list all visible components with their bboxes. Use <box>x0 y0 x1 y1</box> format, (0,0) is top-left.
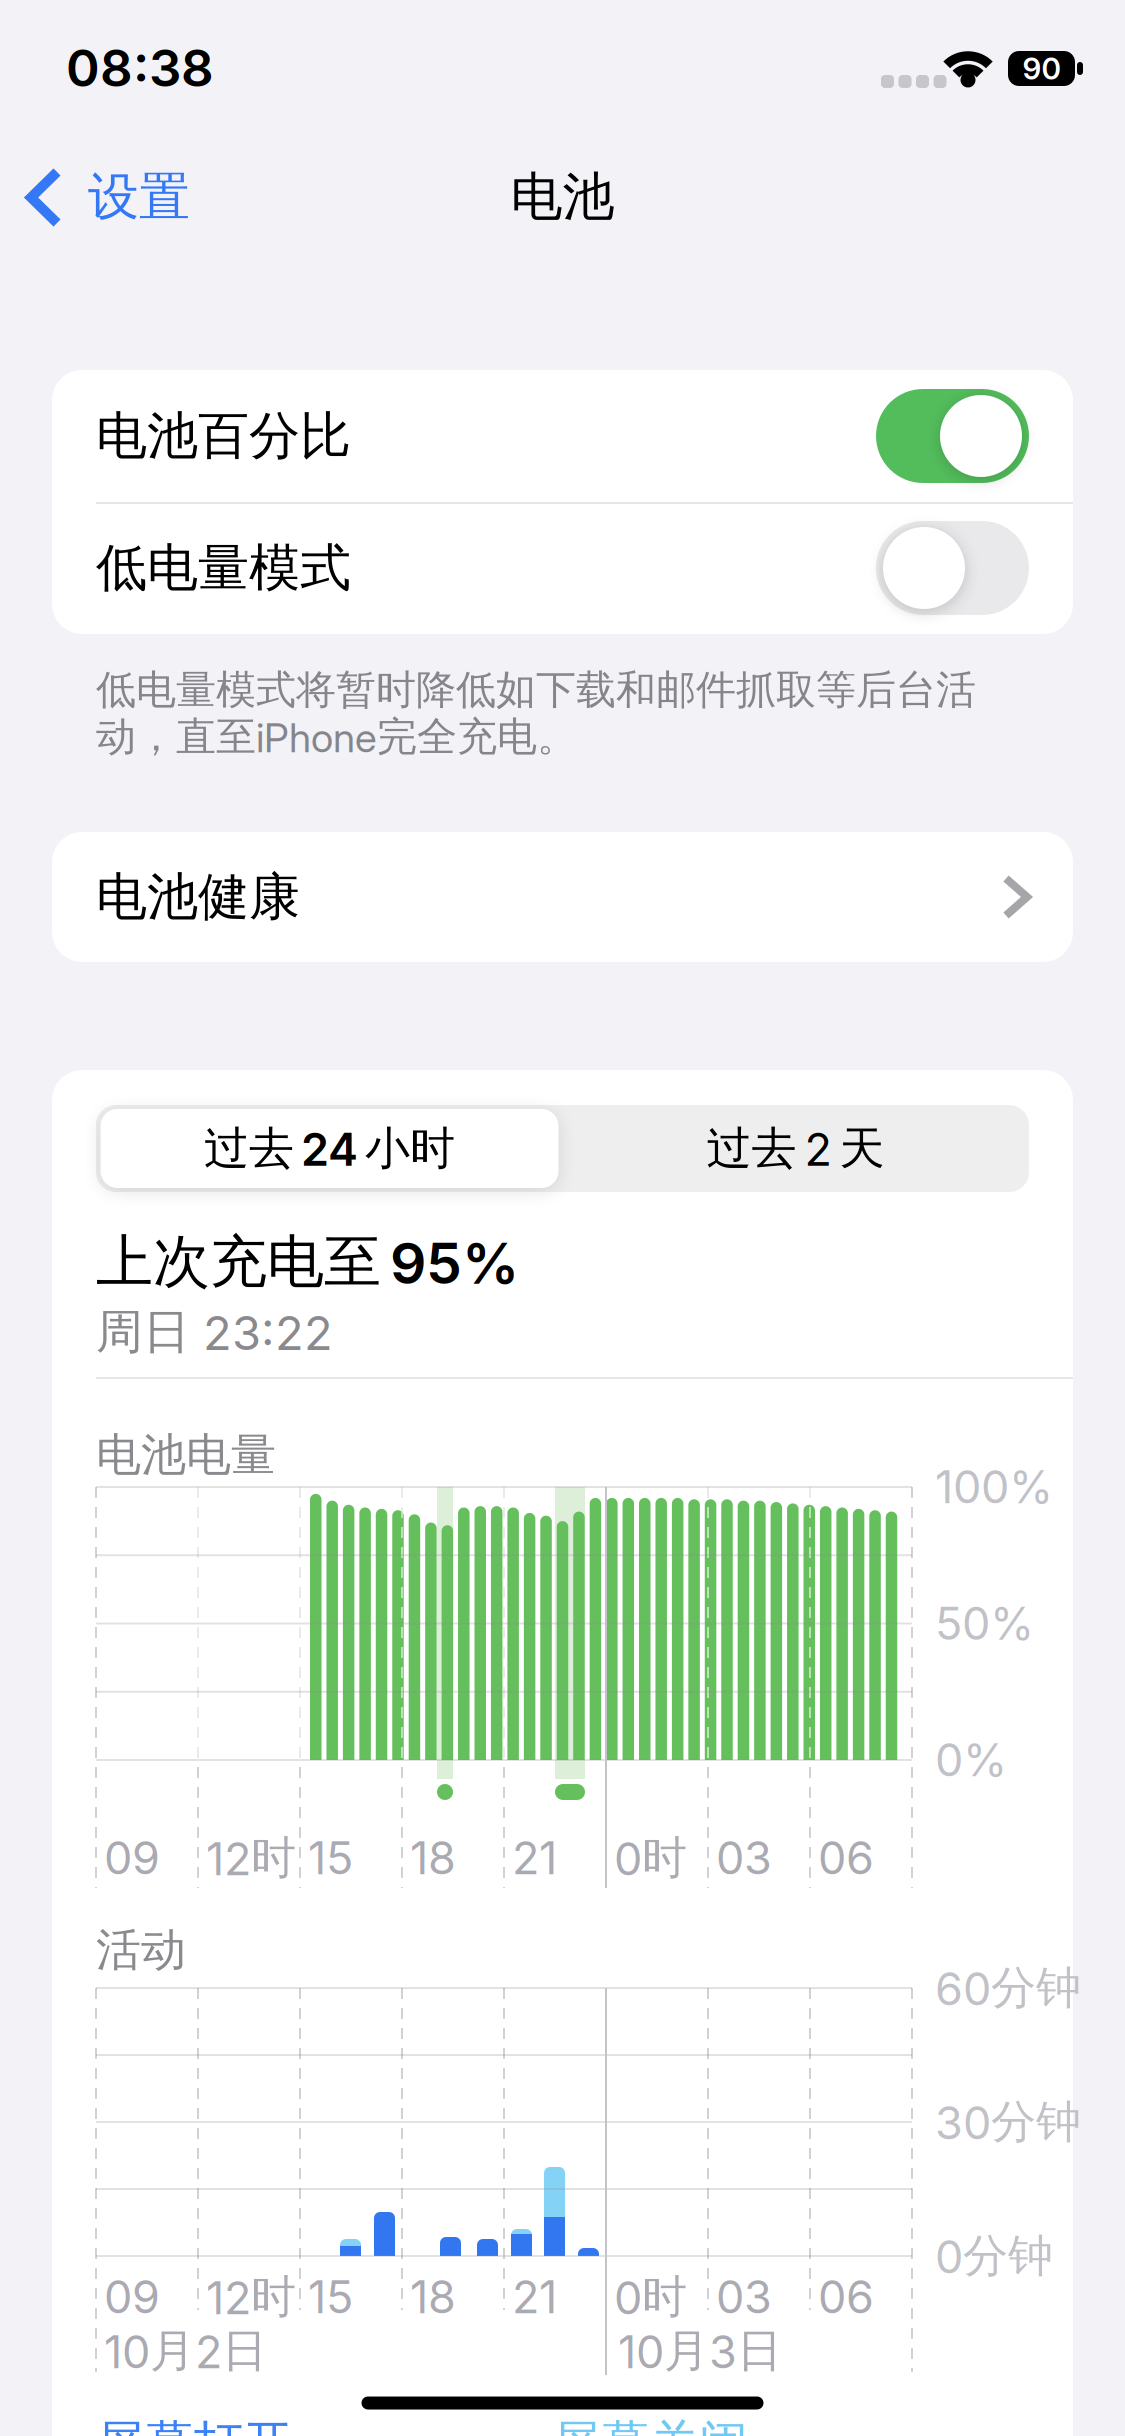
staticText: 0% <box>935 1733 1007 1787</box>
staticText: 09 <box>104 1831 160 1885</box>
staticText: 06 <box>818 2270 874 2324</box>
staticText: 18 <box>410 2270 456 2324</box>
staticText: 12时 <box>206 1830 296 1886</box>
staticText: 03 <box>716 2270 772 2324</box>
staticText: 活动 <box>96 1922 186 1978</box>
staticText: 10月3日 <box>618 2323 782 2379</box>
staticText: 电池百分比 <box>96 405 351 467</box>
staticText: 100% <box>935 1460 1053 1514</box>
staticText: 60分钟 <box>935 1960 1081 2016</box>
staticText: 06 <box>818 1831 874 1885</box>
staticText: 过去 2 天 <box>706 1121 884 1176</box>
button[interactable]: 过去 2 天 <box>562 1105 1028 1192</box>
staticText: 低电量模式 <box>96 537 351 599</box>
staticText: 低电量模式将暂时降低如下载和邮件抓取等后台活 <box>96 665 976 714</box>
staticText: 21 <box>512 1831 557 1885</box>
staticText: 15 <box>308 2270 353 2324</box>
staticText: 09 <box>104 2270 160 2324</box>
staticText: 90 <box>1022 51 1060 86</box>
staticText: 电池健康 <box>96 866 300 928</box>
staticText: 12时 <box>206 2269 296 2325</box>
button[interactable]: 屏幕关闭 <box>552 2413 772 2436</box>
staticText: 0分钟 <box>935 2228 1053 2284</box>
button[interactable]: 电池百分比 <box>0 0 1125 2436</box>
button[interactable]: 返回设置 <box>20 142 250 252</box>
staticText: 设置 <box>88 166 190 228</box>
staticText: 08:38 <box>66 38 214 98</box>
staticText: 30分钟 <box>935 2094 1081 2150</box>
staticText: 15 <box>308 1831 353 1885</box>
staticText: 18 <box>410 1831 456 1885</box>
staticText: 屏幕打开 <box>96 2414 292 2436</box>
staticText: 周日 23:22 <box>96 1303 333 1361</box>
staticText: 动，直至iPhone完全充电。 <box>96 712 577 761</box>
staticText: 电池 <box>510 165 614 229</box>
staticText: 上次充电至 95% <box>96 1227 519 1297</box>
staticText: 过去 24 小时 <box>204 1121 455 1176</box>
button[interactable]: 屏幕打开 <box>96 2413 316 2436</box>
staticText: 屏幕关闭 <box>552 2414 748 2436</box>
staticText: 0时 <box>614 1830 687 1886</box>
button[interactable]: 电池健康 <box>52 832 1073 962</box>
staticText: 电池电量 <box>96 1427 276 1483</box>
staticText: 03 <box>716 1831 772 1885</box>
button[interactable]: 低电量模式 <box>0 0 1125 2436</box>
staticText: 50% <box>935 1597 1034 1650</box>
button[interactable]: 过去 24 小时 <box>96 1105 562 1192</box>
staticText: 0时 <box>614 2269 687 2325</box>
staticText: 10月2日 <box>104 2323 267 2379</box>
staticText: 21 <box>512 2270 557 2324</box>
